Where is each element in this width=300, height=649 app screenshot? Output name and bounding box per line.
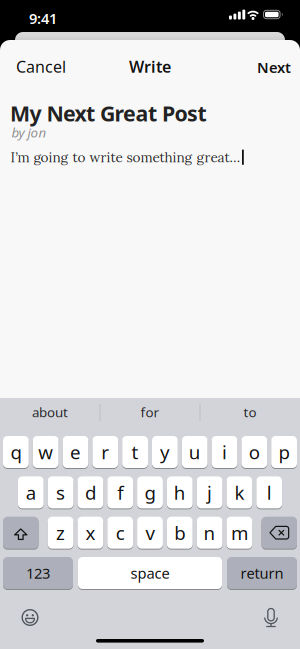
- button[interactable]: t: [122, 436, 148, 468]
- staticText: return: [240, 563, 283, 583]
- button[interactable]: space: [78, 557, 222, 589]
- staticText: 9:41: [29, 8, 57, 28]
- staticText: y: [160, 440, 170, 464]
- staticText: h: [174, 480, 186, 505]
- button[interactable]: h: [167, 476, 193, 508]
- button[interactable]: z: [48, 517, 73, 549]
- staticText: n: [204, 520, 216, 545]
- button[interactable]: to: [200, 399, 300, 425]
- staticText: I’m going to write something great…: [10, 148, 240, 166]
- staticText: Next: [257, 57, 291, 77]
- staticText: 123: [26, 563, 50, 583]
- staticText: for: [140, 403, 159, 421]
- button[interactable]: Cancel: [12, 52, 70, 81]
- staticText: d: [85, 480, 96, 505]
- staticText: v: [145, 520, 154, 545]
- staticText: r: [101, 440, 109, 464]
- button[interactable]: c: [107, 517, 133, 549]
- button[interactable]: d: [77, 476, 103, 508]
- button[interactable]: Delete: [261, 517, 297, 549]
- staticText: a: [26, 480, 36, 505]
- staticText: q: [10, 440, 21, 464]
- button[interactable]: w: [33, 436, 59, 468]
- staticText: p: [279, 440, 290, 464]
- button[interactable]: Next: [253, 53, 295, 81]
- button[interactable]: return: [227, 557, 297, 589]
- button[interactable]: j: [197, 476, 222, 508]
- button[interactable]: f: [107, 476, 133, 508]
- button[interactable]: s: [48, 476, 73, 508]
- button[interactable]: q: [3, 436, 29, 468]
- staticText: z: [56, 520, 65, 545]
- button[interactable]: l: [256, 476, 282, 508]
- button[interactable]: n: [197, 517, 222, 549]
- button[interactable]: b: [167, 517, 193, 549]
- staticText: b: [174, 520, 185, 545]
- button[interactable]: u: [182, 436, 208, 468]
- button[interactable]: a: [18, 476, 44, 508]
- button[interactable]: r: [92, 436, 118, 468]
- staticText: Cancel: [16, 56, 66, 77]
- staticText: t: [132, 440, 139, 464]
- button[interactable]: Dictate: [258, 601, 284, 633]
- button[interactable]: for: [100, 399, 200, 425]
- staticText: k: [234, 480, 244, 505]
- button[interactable]: o: [241, 436, 267, 468]
- staticText: My Next Great Post: [10, 99, 206, 127]
- staticText: c: [116, 520, 125, 545]
- button[interactable]: e: [63, 436, 88, 468]
- staticText: w: [38, 440, 53, 464]
- button[interactable]: v: [137, 517, 163, 549]
- staticText: f: [117, 480, 123, 505]
- staticText: s: [56, 480, 65, 505]
- staticText: e: [70, 440, 81, 464]
- staticText: m: [231, 520, 248, 545]
- button[interactable]: k: [226, 476, 252, 508]
- button[interactable]: Shift: [3, 517, 38, 549]
- staticText: i: [222, 440, 227, 464]
- button[interactable]: y: [152, 436, 178, 468]
- staticText: l: [267, 480, 272, 505]
- staticText: Write: [129, 56, 171, 77]
- staticText: by jon: [11, 123, 46, 141]
- staticText: about: [32, 403, 68, 421]
- staticText: x: [85, 520, 95, 545]
- button[interactable]: x: [77, 517, 103, 549]
- button[interactable]: Emoji: [15, 603, 44, 632]
- staticText: o: [249, 440, 260, 464]
- button[interactable]: p: [271, 436, 297, 468]
- staticText: u: [189, 440, 201, 464]
- staticText: space: [130, 563, 169, 583]
- staticText: g: [144, 480, 155, 505]
- button[interactable]: Numbers: [3, 557, 73, 589]
- button[interactable]: i: [212, 436, 237, 468]
- button[interactable]: g: [137, 476, 163, 508]
- button[interactable]: about: [0, 399, 100, 425]
- button[interactable]: m: [226, 517, 252, 549]
- staticText: j: [207, 480, 212, 505]
- staticText: to: [243, 403, 256, 421]
